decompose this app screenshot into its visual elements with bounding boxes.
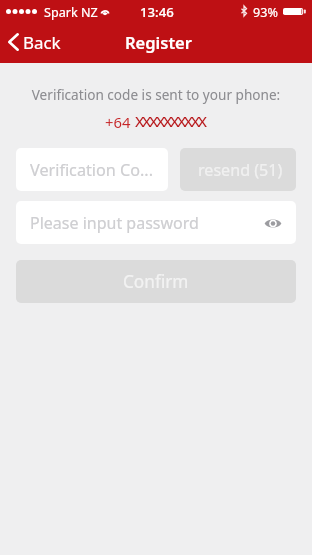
staticText: Verification Co...: [30, 159, 154, 181]
staticText: Verification code is sent to your phone:: [0, 85, 312, 104]
staticText: resend (51): [198, 159, 283, 181]
staticText: Back: [23, 31, 61, 54]
button[interactable]: Please input password: [16, 201, 296, 244]
button[interactable]: Show password: [256, 202, 296, 244]
staticText: +64: [105, 112, 135, 132]
button[interactable]: Verification Co...: [16, 148, 168, 191]
staticText: Confirm: [123, 270, 189, 293]
staticText: 93%: [253, 4, 278, 21]
staticText: Register: [125, 31, 192, 53]
staticText: XXXXXXXXXX: [135, 111, 205, 132]
button[interactable]: Back: [0, 20, 69, 62]
staticText: Please input password: [30, 212, 199, 234]
button[interactable]: resend (51): [180, 148, 296, 191]
staticText: 13:46: [140, 3, 174, 21]
button[interactable]: Confirm: [16, 260, 296, 303]
staticText: Spark NZ: [44, 4, 98, 21]
